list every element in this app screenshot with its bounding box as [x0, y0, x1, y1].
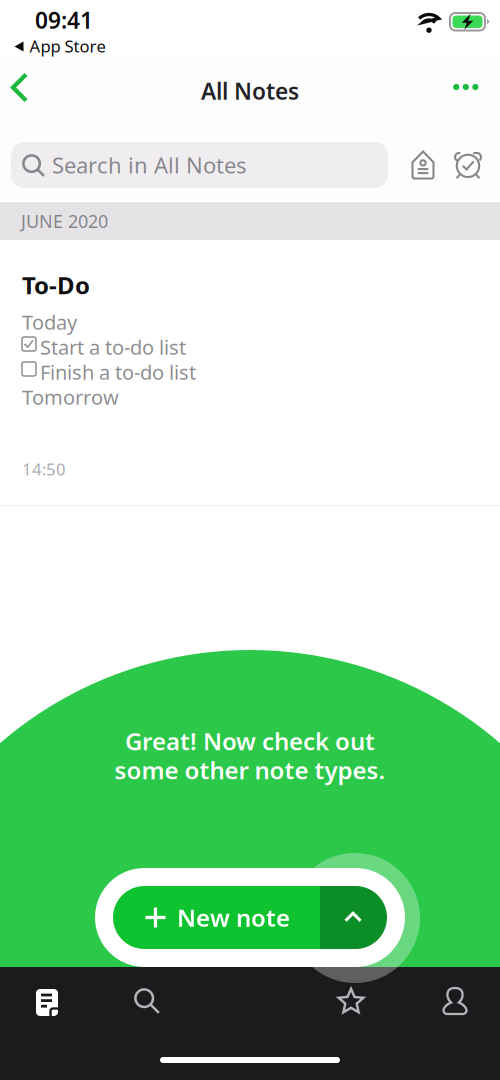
staticText: some other note types. — [114, 754, 385, 786]
button[interactable]: Back — [0, 60, 44, 116]
button[interactable]: Reminders — [445, 142, 491, 188]
staticText: Search in All Notes — [52, 150, 247, 180]
button[interactable]: To-Do — [0, 240, 500, 505]
button[interactable]: More — [439, 59, 493, 115]
staticText: App Store — [29, 35, 105, 57]
button[interactable]: Search in All Notes — [11, 142, 388, 188]
staticText: Finish a to-do list — [40, 359, 196, 385]
staticText: Great! Now check out — [125, 725, 375, 757]
staticText: Start a to-do list — [40, 334, 186, 360]
button[interactable]: More note types — [320, 886, 387, 949]
staticText: Today — [22, 309, 77, 335]
staticText: JUNE 2020 — [21, 209, 108, 233]
staticText: 14:50 — [22, 458, 66, 480]
staticText: All Notes — [201, 76, 299, 106]
staticText: New note — [177, 902, 290, 933]
button[interactable]: Tags — [401, 142, 445, 188]
button[interactable]: Notes — [0, 968, 100, 1034]
button[interactable]: New note — [113, 886, 320, 949]
staticText: 09:41 — [35, 5, 93, 35]
staticText: Tomorrow — [22, 384, 119, 410]
staticText: To-Do — [22, 269, 90, 301]
button[interactable]: Search — [97, 968, 197, 1034]
button[interactable]: Favourites — [301, 968, 401, 1034]
button[interactable]: Account — [405, 968, 500, 1034]
